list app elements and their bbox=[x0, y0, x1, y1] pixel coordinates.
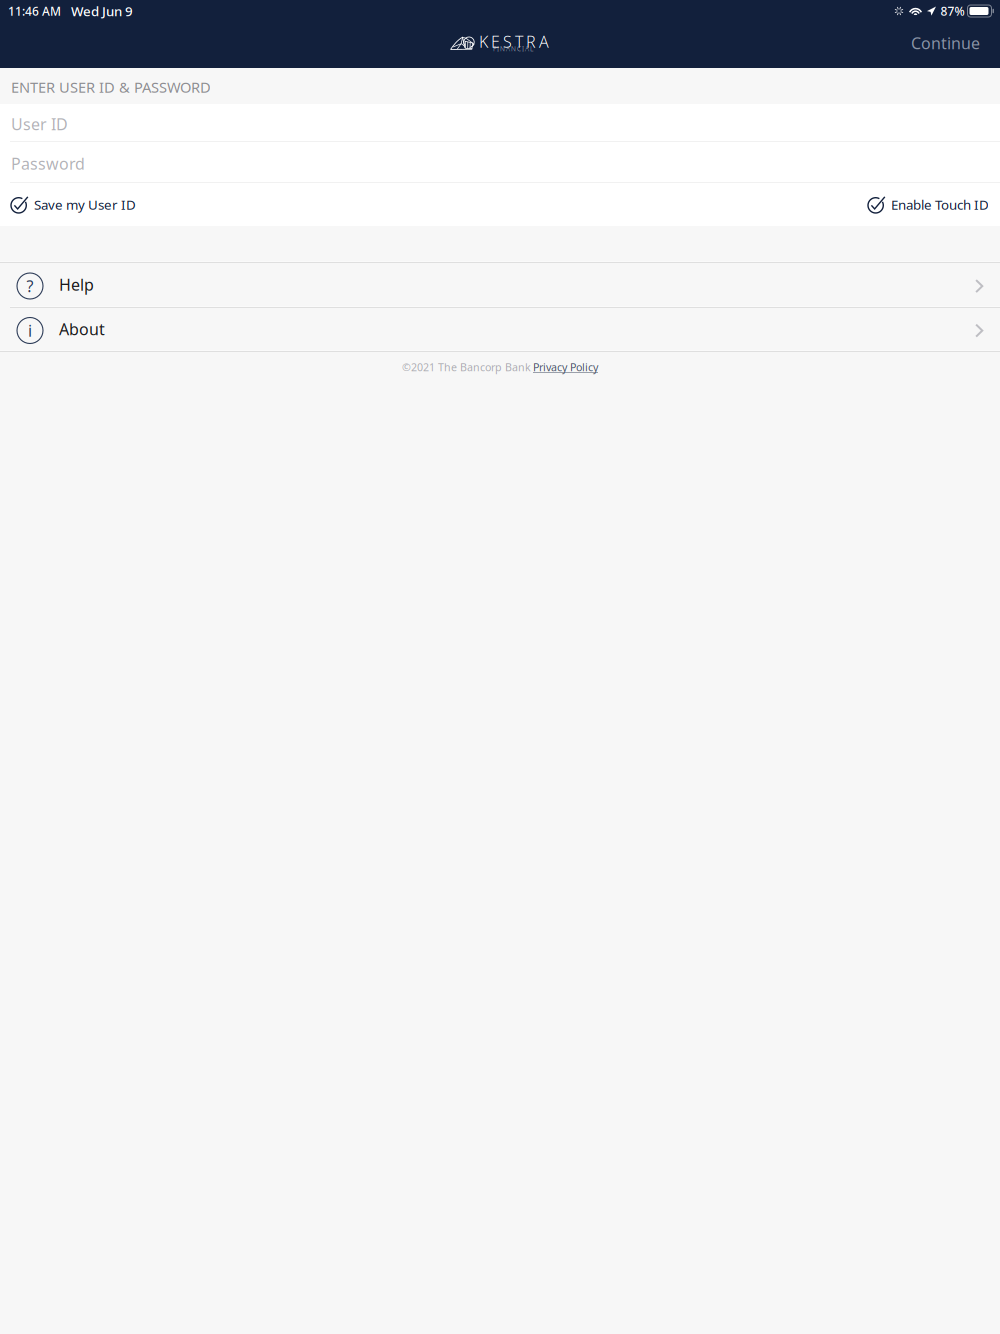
button[interactable]: About bbox=[0, 308, 1000, 350]
staticText: ©2021 The Bancorp Bank bbox=[402, 360, 531, 374]
staticText: Password bbox=[11, 153, 85, 174]
staticText: F I N A N C I A L bbox=[493, 44, 533, 53]
staticText: Help bbox=[59, 274, 94, 295]
staticText: ? bbox=[26, 275, 33, 297]
staticText: Privacy Policy bbox=[533, 360, 598, 374]
button[interactable]: Continue bbox=[891, 25, 1000, 65]
staticText: 11:46 AM bbox=[8, 3, 61, 19]
staticText: User ID bbox=[11, 113, 68, 135]
button[interactable]: Help bbox=[0, 263, 1000, 306]
staticText: i bbox=[28, 320, 32, 341]
staticText: ENTER USER ID & PASSWORD bbox=[11, 77, 211, 97]
staticText: About bbox=[59, 318, 105, 340]
staticText: Continue bbox=[911, 32, 980, 54]
button[interactable]: Enable Touch ID bbox=[868, 184, 989, 225]
staticText: Save my User ID bbox=[34, 196, 136, 213]
button[interactable]: Privacy Policy bbox=[533, 360, 598, 374]
button[interactable]: Save my User ID bbox=[11, 184, 136, 225]
staticText: Enable Touch ID bbox=[891, 196, 989, 213]
button[interactable]: User ID bbox=[0, 104, 1000, 141]
staticText: K E S T R A bbox=[479, 31, 549, 52]
staticText: 87% bbox=[940, 3, 964, 19]
button[interactable]: Password bbox=[0, 142, 1000, 182]
staticText: Wed Jun 9 bbox=[71, 2, 133, 20]
